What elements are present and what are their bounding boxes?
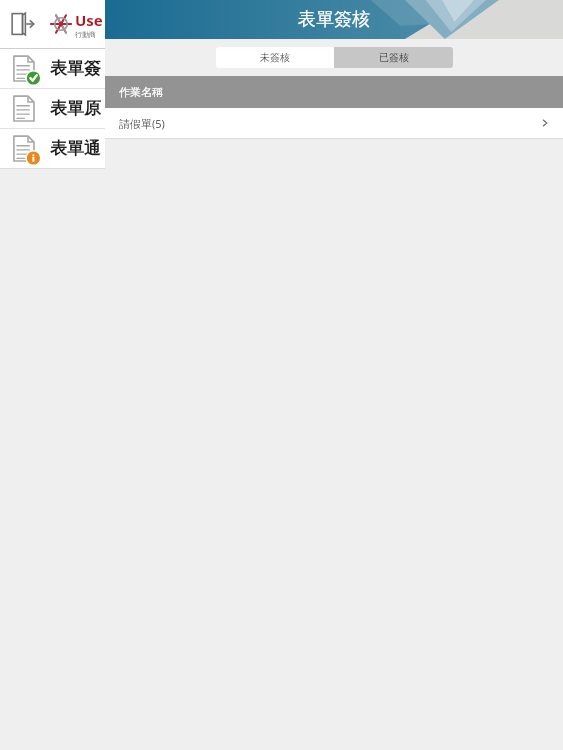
staticText: 表單簽核 [50, 58, 106, 79]
staticText: 已簽核 [379, 51, 409, 64]
button[interactable]: 登出 [0, 2, 44, 46]
staticText: 表單原簽 [50, 98, 106, 119]
staticText: 作業名稱 [119, 85, 163, 99]
staticText: 表單通知 [50, 138, 106, 159]
button[interactable]: 表單簽核 [0, 49, 106, 88]
button[interactable]: 已簽核 [334, 47, 453, 68]
staticText: 表單簽核 [298, 8, 370, 31]
button[interactable]: 表單原簽 [0, 89, 106, 128]
staticText: Use [75, 10, 103, 30]
button[interactable]: 請假單(5) [105, 108, 563, 138]
staticText: 未簽核 [260, 51, 290, 64]
button[interactable]: 未簽核 [216, 47, 334, 68]
button[interactable]: 表單通知 [0, 129, 106, 168]
staticText: 請假單(5) [119, 116, 539, 131]
staticText: 行動商 [75, 30, 96, 39]
